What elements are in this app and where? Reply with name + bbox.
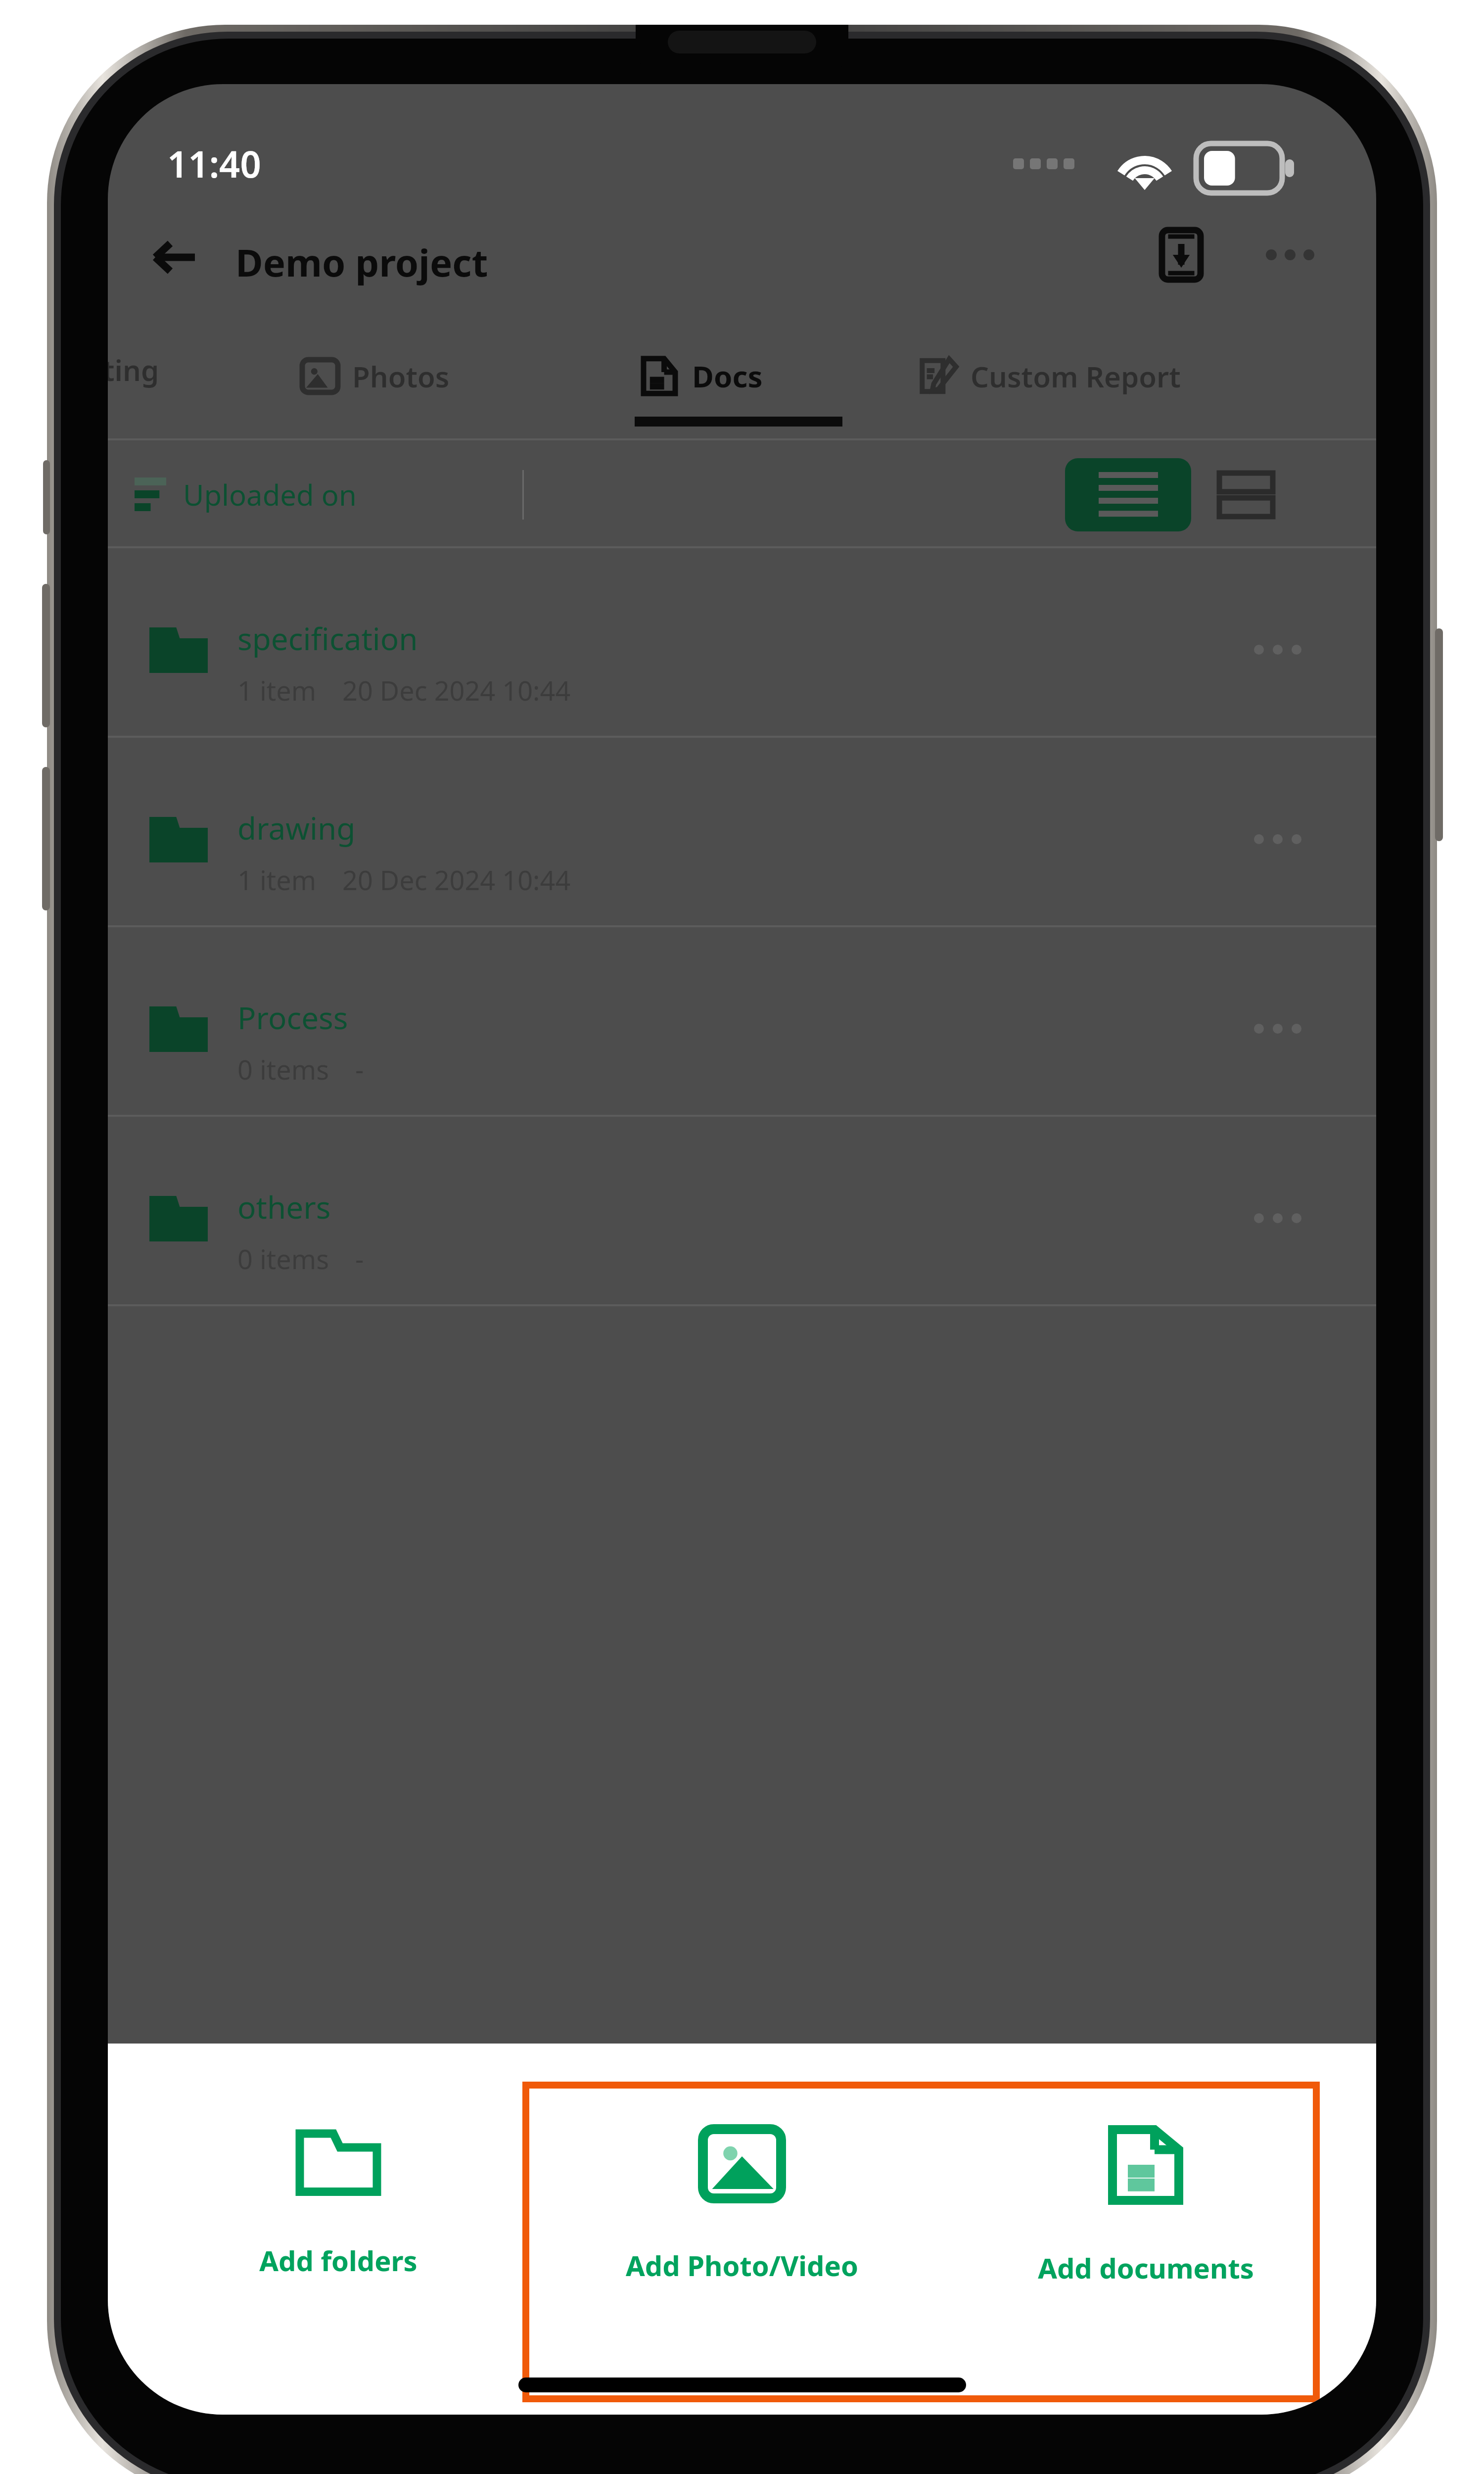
- staticText: 11:40: [167, 139, 261, 189]
- staticText: others: [237, 1186, 331, 1228]
- button[interactable]: Process: [108, 927, 1376, 1115]
- staticText: Add documents: [1038, 2249, 1254, 2286]
- staticText: drawing: [237, 807, 356, 849]
- button[interactable]: drawing: [108, 738, 1376, 925]
- button[interactable]: Docs: [640, 339, 763, 413]
- staticText: Custom Report: [971, 357, 1181, 396]
- button[interactable]: Folder options: [1241, 1181, 1315, 1255]
- button[interactable]: List view: [1065, 458, 1191, 531]
- staticText: Process: [237, 997, 348, 1038]
- staticText: 1 item: [237, 672, 317, 709]
- staticText: Photos: [352, 357, 450, 396]
- button[interactable]: Photos: [301, 339, 450, 413]
- staticText: 20 Dec 2024 10:44: [342, 861, 571, 898]
- staticText: 0 items: [237, 1240, 329, 1277]
- staticText: Docs: [692, 356, 763, 396]
- staticText: Add Photo/Video: [626, 2246, 858, 2284]
- button[interactable]: More options: [1255, 220, 1325, 289]
- staticText: ting: [108, 350, 159, 389]
- button[interactable]: Back: [138, 220, 212, 294]
- button[interactable]: Folder options: [1241, 992, 1315, 1066]
- button[interactable]: Download: [1147, 220, 1216, 289]
- button[interactable]: specification: [108, 548, 1376, 736]
- button[interactable]: Custom Report: [919, 339, 1181, 413]
- button[interactable]: Add folders: [165, 2073, 511, 2279]
- staticText: -: [355, 1240, 364, 1277]
- staticText: 20 Dec 2024 10:44: [342, 672, 571, 709]
- button[interactable]: Grid view: [1194, 458, 1298, 531]
- button[interactable]: Add Photo/Video: [569, 2073, 915, 2284]
- staticText: 0 items: [237, 1051, 329, 1088]
- button[interactable]: Folder options: [1241, 613, 1315, 687]
- button[interactable]: Add documents: [973, 2073, 1319, 2286]
- staticText: Uploaded on: [183, 475, 357, 514]
- button[interactable]: Uploaded on: [132, 457, 357, 531]
- button[interactable]: others: [108, 1117, 1376, 1304]
- staticText: Demo project: [235, 237, 488, 288]
- staticText: 1 item: [237, 861, 317, 898]
- staticText: Add folders: [259, 2241, 417, 2279]
- button[interactable]: Folder options: [1241, 802, 1315, 876]
- staticText: -: [355, 1051, 364, 1088]
- staticText: specification: [237, 618, 418, 659]
